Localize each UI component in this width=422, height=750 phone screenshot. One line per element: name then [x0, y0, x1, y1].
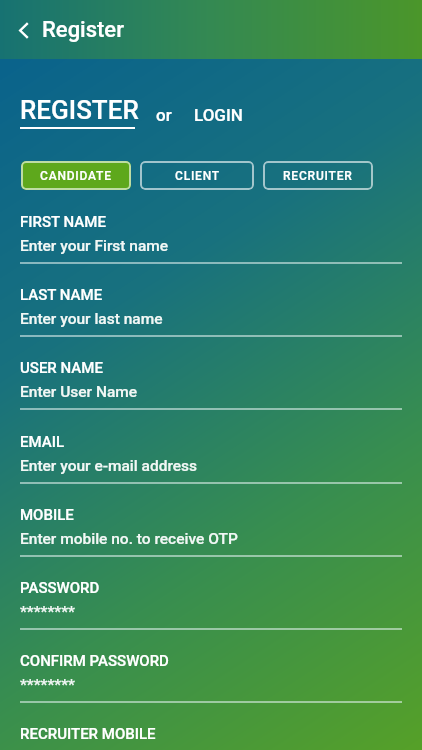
staticText: CONFIRM PASSWORD — [20, 652, 169, 670]
staticText: EMAIL — [20, 433, 65, 451]
staticText: CANDIDATE — [40, 169, 112, 183]
staticText: RECRUITER MOBILE — [20, 725, 156, 743]
staticText: Enter User Name — [20, 383, 138, 401]
staticText: Enter mobile no. to receive OTP — [20, 530, 238, 548]
staticText: FIRST NAME — [20, 213, 106, 231]
staticText: Register — [42, 17, 124, 43]
staticText: Enter your e-mail address — [20, 457, 198, 475]
button[interactable]: CLIENT — [140, 161, 254, 190]
staticText: ******** — [20, 603, 75, 621]
button[interactable]: Back — [3, 6, 45, 54]
staticText: PASSWORD — [20, 579, 100, 597]
button[interactable]: RECRUITER — [263, 161, 373, 190]
button[interactable]: CANDIDATE — [21, 161, 131, 190]
staticText: Enter your last name — [20, 310, 163, 328]
staticText: LAST NAME — [20, 286, 103, 304]
staticText: USER NAME — [20, 359, 103, 377]
staticText: REGISTER — [20, 95, 139, 125]
staticText: or — [156, 105, 172, 125]
button[interactable]: LOGIN — [194, 105, 243, 125]
staticText: ******** — [20, 676, 75, 694]
staticText: Enter your First name — [20, 237, 169, 255]
staticText: RECRUITER — [283, 169, 353, 183]
staticText: CLIENT — [175, 169, 220, 183]
button[interactable]: REGISTER — [20, 95, 139, 129]
staticText: MOBILE — [20, 506, 74, 524]
